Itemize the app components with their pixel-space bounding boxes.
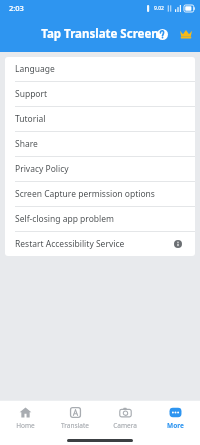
staticText: Screen Capture permission options xyxy=(15,188,155,200)
button[interactable]: Support xyxy=(5,82,195,106)
other: Info xyxy=(171,237,185,251)
staticText: Support xyxy=(15,88,48,100)
staticText: Share xyxy=(15,138,38,150)
button[interactable]: Privacy Policy xyxy=(5,157,195,181)
staticText: Restart Accessibility Service xyxy=(15,238,125,250)
button[interactable]: Camera xyxy=(100,403,150,433)
button[interactable]: More xyxy=(150,403,200,433)
button[interactable]: Share xyxy=(5,132,195,156)
button[interactable]: Translate xyxy=(50,403,100,433)
staticText: Translate xyxy=(61,421,89,430)
button[interactable]: Self-closing app problem xyxy=(5,207,195,231)
staticText: Tutorial xyxy=(15,113,46,125)
button[interactable]: Premium xyxy=(176,24,196,44)
staticText: 2:03 xyxy=(9,3,24,13)
staticText: Home xyxy=(16,421,35,430)
staticText: Camera xyxy=(113,421,137,430)
staticText: Privacy Policy xyxy=(15,163,69,175)
staticText: 9.02 xyxy=(154,5,164,12)
staticText: Language xyxy=(15,63,55,75)
staticText: Self-closing app problem xyxy=(15,213,114,225)
button[interactable]: Tutorial xyxy=(5,107,195,131)
button[interactable]: Language xyxy=(5,57,195,81)
button[interactable]: Help xyxy=(152,24,172,44)
button[interactable]: Restart Accessibility Service xyxy=(5,232,195,256)
staticText: More xyxy=(167,421,184,430)
staticText: Tap Translate Screen xyxy=(41,26,159,42)
button[interactable]: Home xyxy=(0,403,50,433)
button[interactable]: Screen Capture permission options xyxy=(5,182,195,206)
